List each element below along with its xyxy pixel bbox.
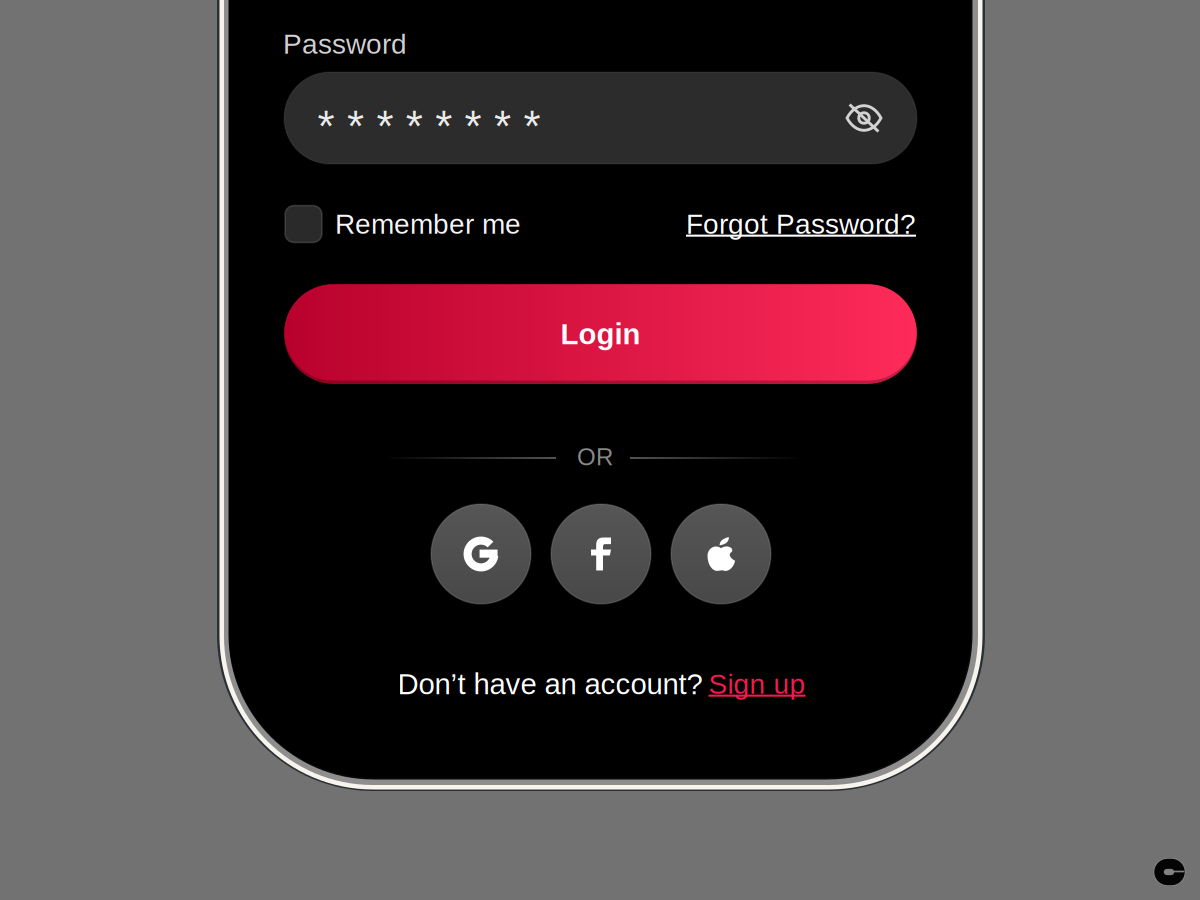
button[interactable]: Sign in with Facebook (551, 504, 651, 604)
staticText: * * * * * * * * (318, 102, 540, 151)
button[interactable]: Remember me (285, 200, 520, 248)
staticText: Remember me (335, 208, 521, 240)
button[interactable]: Sign in with Apple (671, 504, 771, 604)
staticText: Sign up (708, 668, 805, 700)
staticText: Forgot Password? (686, 208, 916, 240)
button[interactable]: Sign up (702, 662, 812, 706)
button[interactable]: Forgot Password? (686, 201, 916, 247)
staticText: Login (560, 318, 640, 350)
staticText: OR (577, 444, 613, 470)
staticText: Password (283, 28, 407, 60)
staticText: Don’t have an account? (397, 668, 702, 700)
button[interactable]: Login (284, 284, 917, 384)
button[interactable]: Show password (826, 80, 902, 156)
button[interactable]: Sign in with Google (431, 504, 531, 604)
